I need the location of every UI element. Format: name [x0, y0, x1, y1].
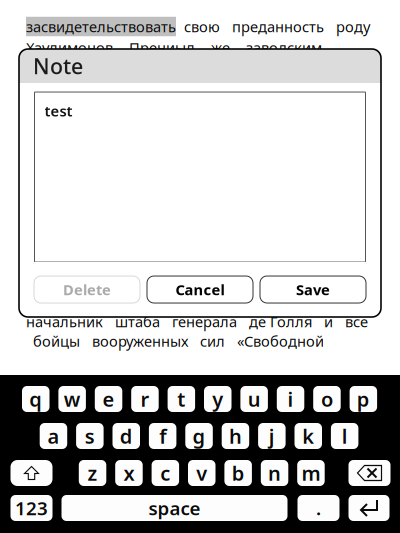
- button[interactable]: 123: [10, 495, 52, 521]
- button[interactable]: o: [313, 386, 341, 412]
- button[interactable]: q: [22, 386, 49, 412]
- button[interactable]: space: [61, 495, 287, 521]
- staticText: t: [177, 386, 185, 412]
- staticText: u: [248, 386, 261, 412]
- button[interactable]: Return: [348, 495, 389, 521]
- staticText: y: [212, 386, 223, 412]
- staticText: q: [29, 386, 42, 412]
- button[interactable]: h: [222, 423, 249, 449]
- staticText: r: [140, 386, 149, 412]
- button[interactable]: x: [115, 460, 143, 486]
- button[interactable]: f: [149, 423, 176, 449]
- staticText: s: [85, 423, 95, 449]
- staticText: i: [288, 386, 294, 412]
- button[interactable]: t: [168, 386, 195, 412]
- staticText: p: [357, 386, 370, 412]
- button[interactable]: c: [152, 460, 179, 486]
- button[interactable]: v: [188, 460, 215, 486]
- staticText: начальник штаба генерала де Голля и все: [26, 312, 368, 331]
- staticText: w: [64, 386, 81, 412]
- button[interactable]: s: [76, 423, 104, 449]
- staticText: n: [268, 460, 281, 486]
- staticText: h: [229, 423, 242, 449]
- staticText: Save: [296, 280, 330, 299]
- button[interactable]: y: [204, 386, 231, 412]
- button[interactable]: p: [350, 386, 377, 412]
- staticText: d: [120, 423, 133, 449]
- staticText: g: [193, 423, 206, 449]
- button[interactable]: e: [95, 386, 122, 412]
- staticText: Note: [33, 52, 83, 80]
- button[interactable]: i: [277, 386, 304, 412]
- staticText: space: [148, 496, 200, 520]
- button[interactable]: Delete: [34, 276, 140, 303]
- staticText: x: [123, 460, 134, 486]
- button[interactable]: g: [185, 423, 213, 449]
- button[interactable]: m: [297, 460, 325, 486]
- staticText: Cancel: [175, 280, 224, 299]
- button[interactable]: l: [331, 423, 358, 449]
- button[interactable]: n: [261, 460, 288, 486]
- staticText: e: [102, 386, 114, 412]
- staticText: засвидетельствовать: [26, 17, 176, 36]
- staticText: c: [160, 460, 170, 486]
- button[interactable]: a: [40, 423, 67, 449]
- staticText: l: [342, 423, 348, 449]
- button[interactable]: j: [258, 423, 286, 449]
- button[interactable]: Delete: [348, 460, 390, 486]
- staticText: Delete: [63, 280, 111, 299]
- button[interactable]: b: [224, 460, 252, 486]
- staticText: Хаулимонов Прениыл же заводским: [26, 38, 322, 57]
- button[interactable]: u: [240, 386, 268, 412]
- staticText: свою преданность роду: [176, 17, 370, 36]
- staticText: a: [47, 423, 59, 449]
- button[interactable]: d: [112, 423, 140, 449]
- staticText: k: [302, 423, 314, 449]
- button[interactable]: r: [131, 386, 159, 412]
- staticText: test: [44, 101, 72, 120]
- staticText: .: [316, 496, 321, 520]
- staticText: v: [196, 460, 207, 486]
- staticText: j: [269, 423, 275, 449]
- staticText: b: [232, 460, 245, 486]
- button[interactable]: Cancel: [147, 276, 253, 303]
- button[interactable]: k: [294, 423, 322, 449]
- staticText: m: [301, 460, 320, 486]
- staticText: 123: [15, 496, 48, 520]
- button[interactable]: Shift: [10, 460, 52, 486]
- button[interactable]: w: [58, 386, 86, 412]
- staticText: z: [87, 460, 97, 486]
- staticText: f: [159, 423, 166, 449]
- staticText: o: [321, 386, 333, 412]
- button[interactable]: z: [79, 460, 106, 486]
- staticText: бойцы вооруженных сил «Свободной: [33, 331, 324, 351]
- button[interactable]: Save: [260, 276, 366, 303]
- button[interactable]: .: [297, 495, 339, 521]
